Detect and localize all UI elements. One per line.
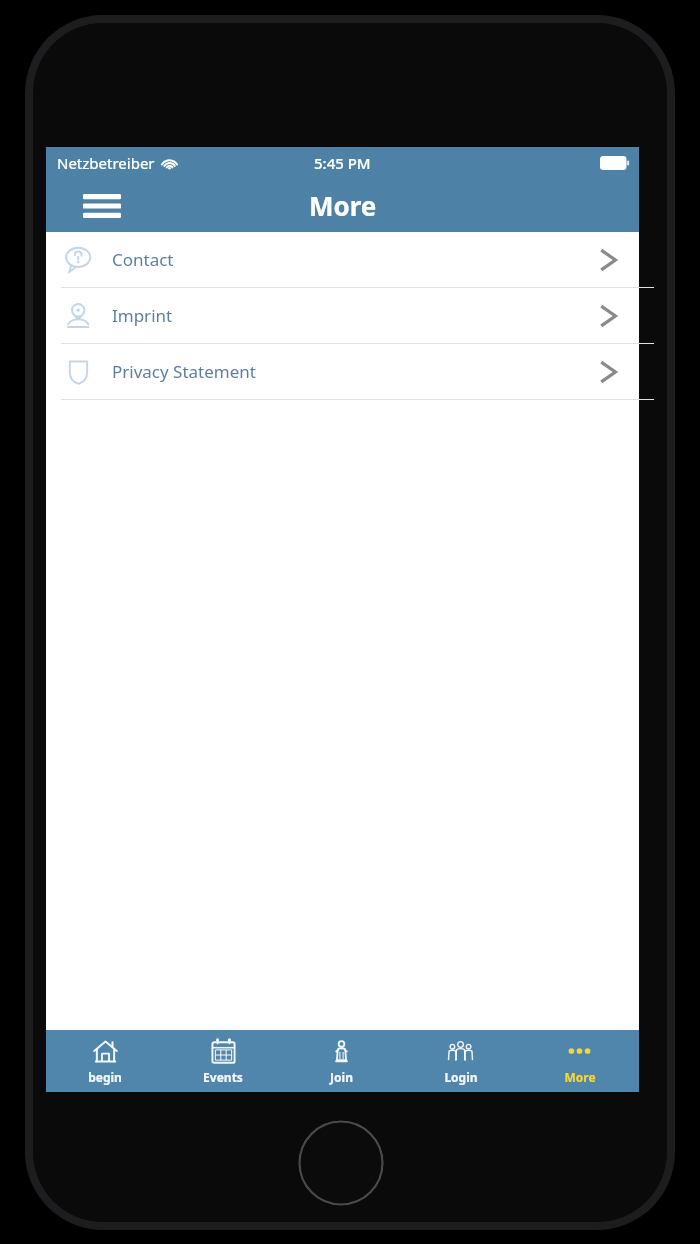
staticText: 5:45 PM (314, 153, 371, 173)
button[interactable]: Privacy Statement (46, 344, 639, 399)
button[interactable]: Open navigation menu (76, 186, 128, 226)
button[interactable]: Imprint (46, 288, 639, 343)
button[interactable]: Join (282, 1030, 401, 1092)
staticText: Contact (112, 248, 174, 271)
staticText: Login (444, 1069, 478, 1085)
staticText: Join (330, 1069, 353, 1085)
button[interactable]: Login (401, 1030, 520, 1092)
staticText: More (564, 1069, 596, 1085)
staticText: Netzbetreiber (57, 153, 155, 173)
button[interactable]: begin (46, 1030, 164, 1092)
staticText: begin (88, 1069, 122, 1085)
button[interactable]: Contact (46, 232, 639, 287)
staticText: More (309, 188, 377, 223)
staticText: Imprint (112, 304, 173, 327)
staticText: Privacy Statement (112, 360, 256, 383)
button[interactable]: Events (164, 1030, 282, 1092)
staticText: Events (203, 1069, 243, 1085)
button[interactable]: More (520, 1030, 639, 1092)
